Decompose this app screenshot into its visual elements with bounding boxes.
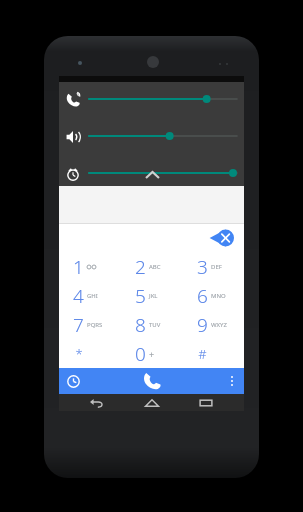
staticText: WXYZ [211,321,227,329]
staticText: MNO [211,292,226,300]
button[interactable]: 3 [182,252,244,281]
staticText: 4 [73,283,84,309]
button[interactable]: 5 [120,281,182,310]
button[interactable]: 1 [59,252,120,281]
staticText: # [198,345,207,363]
staticText: 1 [73,254,84,280]
staticText: GHI [87,292,98,300]
button[interactable]: # [182,339,244,368]
button[interactable]: 0 [120,339,182,368]
button[interactable] [59,163,244,183]
staticText: 8 [135,312,146,338]
button[interactable]: 7 [59,310,120,339]
button[interactable]: Recent apps [190,394,222,411]
button[interactable]: Backspace [209,228,235,248]
staticText: 6 [197,283,208,309]
staticText: DEF [211,263,222,271]
button[interactable]: 8 [120,310,182,339]
button[interactable] [59,126,244,146]
button[interactable]: 2 [120,252,182,281]
staticText: 0 [135,341,146,367]
button[interactable]: 6 [182,281,244,310]
button[interactable]: Call history [62,370,84,392]
button[interactable]: Call [128,369,176,393]
staticText: JKL [149,292,158,300]
staticText: ABC [149,263,161,271]
staticText: PQRS [87,321,103,329]
staticText: TUV [149,321,161,329]
button[interactable]: Back [81,394,113,411]
button[interactable]: 4 [59,281,120,310]
staticText: 5 [135,283,146,309]
button[interactable]: More options [223,370,241,392]
button[interactable]: Home [136,394,168,411]
button[interactable]: Collapse volume panel [125,166,179,184]
button[interactable]: 9 [182,310,244,339]
button[interactable]: * [59,339,120,368]
staticText: + [149,348,155,360]
button[interactable] [59,89,244,109]
staticText: 7 [73,312,84,338]
staticText: * [75,345,83,363]
staticText: 3 [197,254,208,280]
staticText: 9 [197,312,208,338]
staticText: 2 [135,254,146,280]
